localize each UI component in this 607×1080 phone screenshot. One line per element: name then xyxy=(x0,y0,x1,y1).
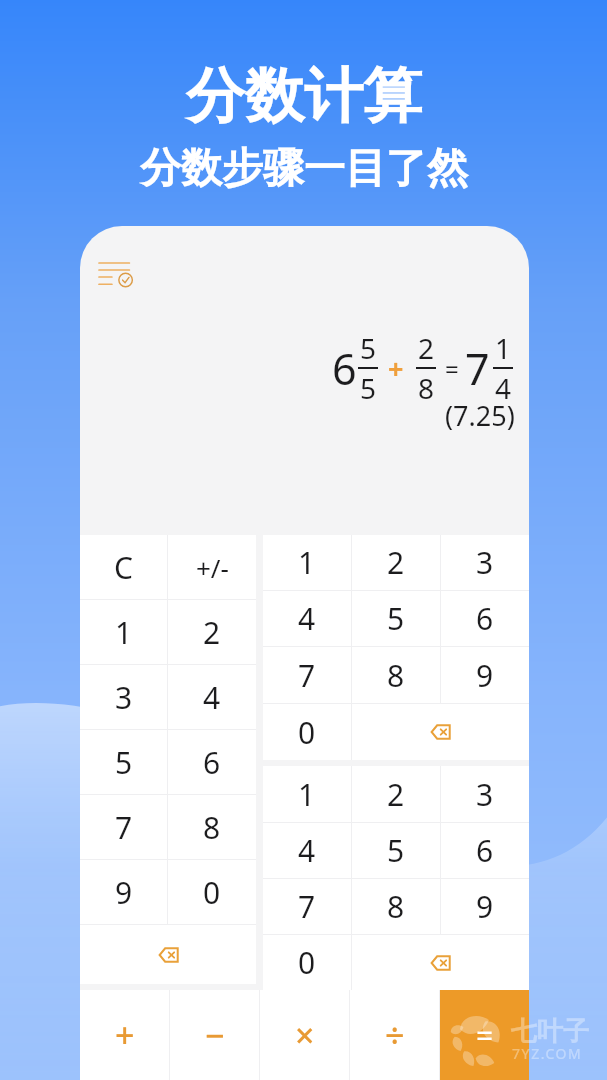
button[interactable]: 1 xyxy=(80,600,167,664)
staticText: 9 xyxy=(476,655,494,696)
button[interactable]: 4 xyxy=(263,823,351,878)
staticText: 1 xyxy=(115,612,133,653)
staticText: 3 xyxy=(476,774,494,815)
staticText: 8 xyxy=(418,369,435,407)
staticText: (7.25) xyxy=(445,397,515,434)
staticText: 0 xyxy=(298,942,316,983)
button[interactable]: 8 xyxy=(352,879,440,934)
button[interactable]: 8 xyxy=(168,795,256,859)
staticText: 9 xyxy=(476,886,494,927)
button[interactable]: 7 xyxy=(263,647,351,703)
button[interactable]: 3 xyxy=(80,665,167,729)
staticText: 5 xyxy=(387,830,405,871)
staticText: 5 xyxy=(115,742,133,783)
staticText: 6 xyxy=(203,742,221,783)
button[interactable]: 6 xyxy=(441,823,529,878)
button[interactable]: 6 xyxy=(441,591,529,646)
staticText: 4 xyxy=(298,830,316,871)
button[interactable]: 0 xyxy=(263,935,351,990)
staticText: 4 xyxy=(495,369,512,407)
staticText: 5 xyxy=(360,329,377,367)
staticText: 0 xyxy=(298,712,316,753)
button[interactable]: 5 xyxy=(80,730,167,794)
button[interactable]: − xyxy=(170,990,259,1080)
staticText: 4 xyxy=(203,677,221,718)
staticText: 6 xyxy=(476,598,494,639)
button[interactable]: 6 xyxy=(168,730,256,794)
staticText: 0 xyxy=(203,872,221,913)
button[interactable]: = xyxy=(440,990,529,1080)
button[interactable]: ÷ xyxy=(350,990,439,1080)
staticText: 8 xyxy=(387,655,405,696)
staticText: +/- xyxy=(196,550,229,585)
button[interactable]: 9 xyxy=(441,647,529,703)
button[interactable]: +/- xyxy=(168,535,256,599)
staticText: 2 xyxy=(387,542,405,583)
staticText: 七叶子 xyxy=(511,1015,589,1048)
staticText: × xyxy=(295,1012,315,1058)
button[interactable]: 4 xyxy=(168,665,256,729)
staticText: 2 xyxy=(418,329,435,367)
staticText: 2 xyxy=(387,774,405,815)
button[interactable]: Backspace xyxy=(352,935,529,990)
staticText: 7 xyxy=(115,807,133,848)
staticText: 2 xyxy=(203,612,221,653)
staticText: 5 xyxy=(387,598,405,639)
staticText: 6 xyxy=(476,830,494,871)
staticText: 3 xyxy=(115,677,133,718)
staticText: 7 xyxy=(465,339,490,398)
button[interactable]: 0 xyxy=(168,860,256,924)
staticText: = xyxy=(445,352,459,385)
staticText: 7 xyxy=(298,655,316,696)
button[interactable]: 8 xyxy=(352,647,440,703)
staticText: 1 xyxy=(298,542,316,583)
staticText: 7YZ.COM xyxy=(512,1044,583,1063)
button[interactable]: 1 xyxy=(263,766,351,822)
staticText: + xyxy=(388,350,404,387)
staticText: 8 xyxy=(203,807,221,848)
button[interactable]: 2 xyxy=(168,600,256,664)
staticText: − xyxy=(205,1012,225,1058)
button[interactable]: 5 xyxy=(352,591,440,646)
button[interactable]: 7 xyxy=(80,795,167,859)
button[interactable]: C xyxy=(80,535,167,599)
button[interactable]: + xyxy=(80,990,169,1080)
button[interactable]: 3 xyxy=(441,535,529,590)
staticText: 3 xyxy=(476,542,494,583)
button[interactable]: 7 xyxy=(263,879,351,934)
staticText: 分数步骤一目了然 xyxy=(140,143,468,195)
button[interactable]: × xyxy=(260,990,349,1080)
staticText: 1 xyxy=(495,329,512,367)
button[interactable]: 2 xyxy=(352,766,440,822)
button[interactable]: 3 xyxy=(441,766,529,822)
button[interactable]: 0 xyxy=(263,704,351,760)
staticText: 分数计算 xyxy=(186,59,422,133)
button[interactable]: 9 xyxy=(441,879,529,934)
staticText: + xyxy=(115,1012,135,1058)
staticText: = xyxy=(476,1015,494,1056)
button[interactable]: 4 xyxy=(263,591,351,646)
staticText: ÷ xyxy=(385,1012,405,1058)
button[interactable]: Backspace xyxy=(352,704,529,760)
button[interactable]: 1 xyxy=(263,535,351,590)
button[interactable]: Backspace xyxy=(80,925,256,984)
staticText: 9 xyxy=(115,872,133,913)
staticText: 4 xyxy=(298,598,316,639)
button[interactable]: 2 xyxy=(352,535,440,590)
staticText: 7 xyxy=(298,886,316,927)
staticText: 6 xyxy=(332,339,357,398)
staticText: 1 xyxy=(298,774,316,815)
button[interactable]: 5 xyxy=(352,823,440,878)
staticText: C xyxy=(114,547,133,588)
button[interactable]: History xyxy=(99,261,137,286)
staticText: 8 xyxy=(387,886,405,927)
button[interactable]: 9 xyxy=(80,860,167,924)
staticText: 5 xyxy=(360,369,377,407)
